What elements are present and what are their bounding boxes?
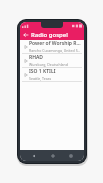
staticText: RHAD [29, 54, 44, 61]
staticText: Seattle, Texas [29, 76, 52, 81]
button[interactable]: RHAD [20, 54, 84, 67]
button[interactable]: Back [28, 150, 39, 161]
button[interactable]: ISO 1 KTILI [20, 68, 84, 81]
button[interactable]: Back [20, 29, 31, 40]
staticText: Power of Worship Radio [29, 40, 81, 47]
staticText: Rancho Cucamonga, United States [29, 48, 81, 53]
staticText: ISO 1 KTILI [29, 68, 56, 75]
staticText: Radio gospel [31, 31, 68, 39]
button[interactable]: Power of Worship Radio [20, 40, 84, 53]
staticText: Wurzburg, Deutschland [29, 62, 68, 67]
button[interactable]: Home [47, 150, 58, 161]
button[interactable]: Recent apps [65, 150, 76, 161]
